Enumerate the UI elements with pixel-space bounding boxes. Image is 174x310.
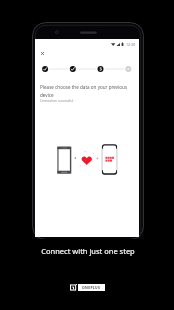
- button[interactable]: Close: [35, 46, 49, 60]
- staticText: ONEPLUS: [82, 285, 101, 290]
- staticText: Connect with just one step: [41, 246, 135, 256]
- staticText: Please choose the data on your previous …: [40, 84, 134, 98]
- staticText: Connection successful: [40, 99, 74, 103]
- staticText: 12:30: [126, 42, 136, 47]
- button[interactable]: OnePlus: [70, 284, 105, 291]
